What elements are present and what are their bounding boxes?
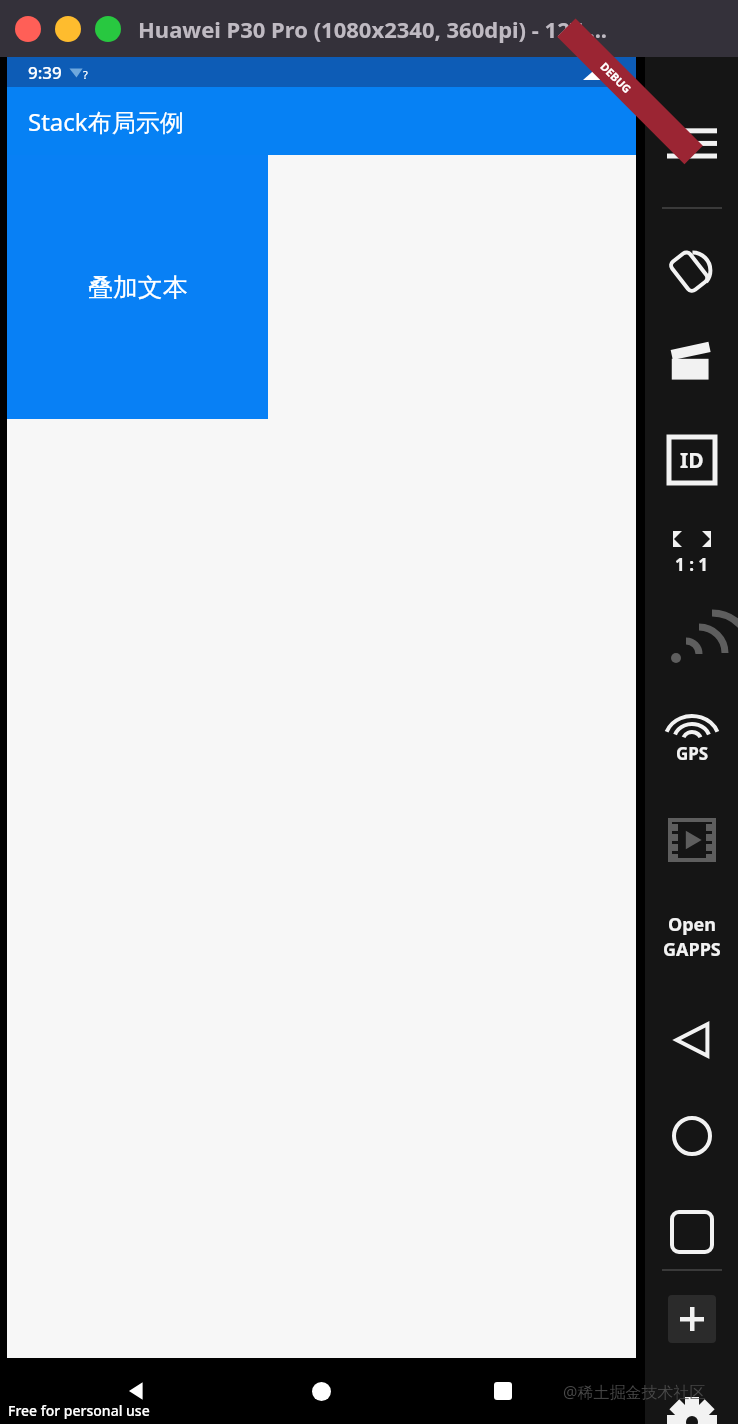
button[interactable]: Rotate — [653, 235, 731, 305]
button[interactable]: Window control — [15, 16, 41, 42]
staticText: ? — [83, 67, 88, 82]
button[interactable]: Home — [293, 1363, 349, 1419]
staticText: @稀土掘金技术社区 — [563, 1381, 706, 1403]
staticText: ID — [680, 446, 704, 475]
button[interactable]: Open GApps — [653, 902, 731, 972]
button[interactable]: Device ID — [653, 425, 731, 495]
button[interactable]: Back — [653, 1005, 731, 1075]
button[interactable]: Zoom in — [668, 1295, 716, 1343]
staticText: 1 : 1 — [675, 553, 709, 576]
button[interactable]: Window control — [55, 16, 81, 42]
button[interactable]: Location — [653, 707, 731, 777]
staticText: GAPPS — [663, 937, 721, 962]
button[interactable]: Recent apps — [475, 1363, 531, 1419]
button[interactable]: Zoom 1 to 1 — [653, 515, 731, 585]
staticText: 叠加文本 — [88, 272, 188, 303]
button[interactable]: Cellular — [653, 607, 731, 677]
button[interactable]: Overview — [653, 1197, 731, 1267]
staticText: GPS — [676, 742, 709, 765]
button[interactable]: Home — [653, 1101, 731, 1171]
staticText: 9:39 — [28, 61, 62, 84]
staticText: DEBUG — [597, 59, 635, 96]
button[interactable]: Menu — [653, 107, 731, 177]
staticText: Open — [668, 912, 717, 937]
button[interactable]: Record and playback — [653, 805, 731, 875]
button[interactable]: Back — [108, 1363, 164, 1419]
staticText: Stack布局示例 — [28, 105, 184, 138]
button[interactable]: Screen record — [653, 327, 731, 397]
button[interactable]: Window control — [95, 16, 121, 42]
button[interactable]: Settings — [653, 1387, 731, 1424]
staticText: Huawei P30 Pro (1080x2340, 360dpi) - 127… — [138, 14, 608, 44]
button[interactable]: 叠加文本 — [7, 155, 268, 419]
staticText: Free for personal use — [8, 1401, 150, 1420]
